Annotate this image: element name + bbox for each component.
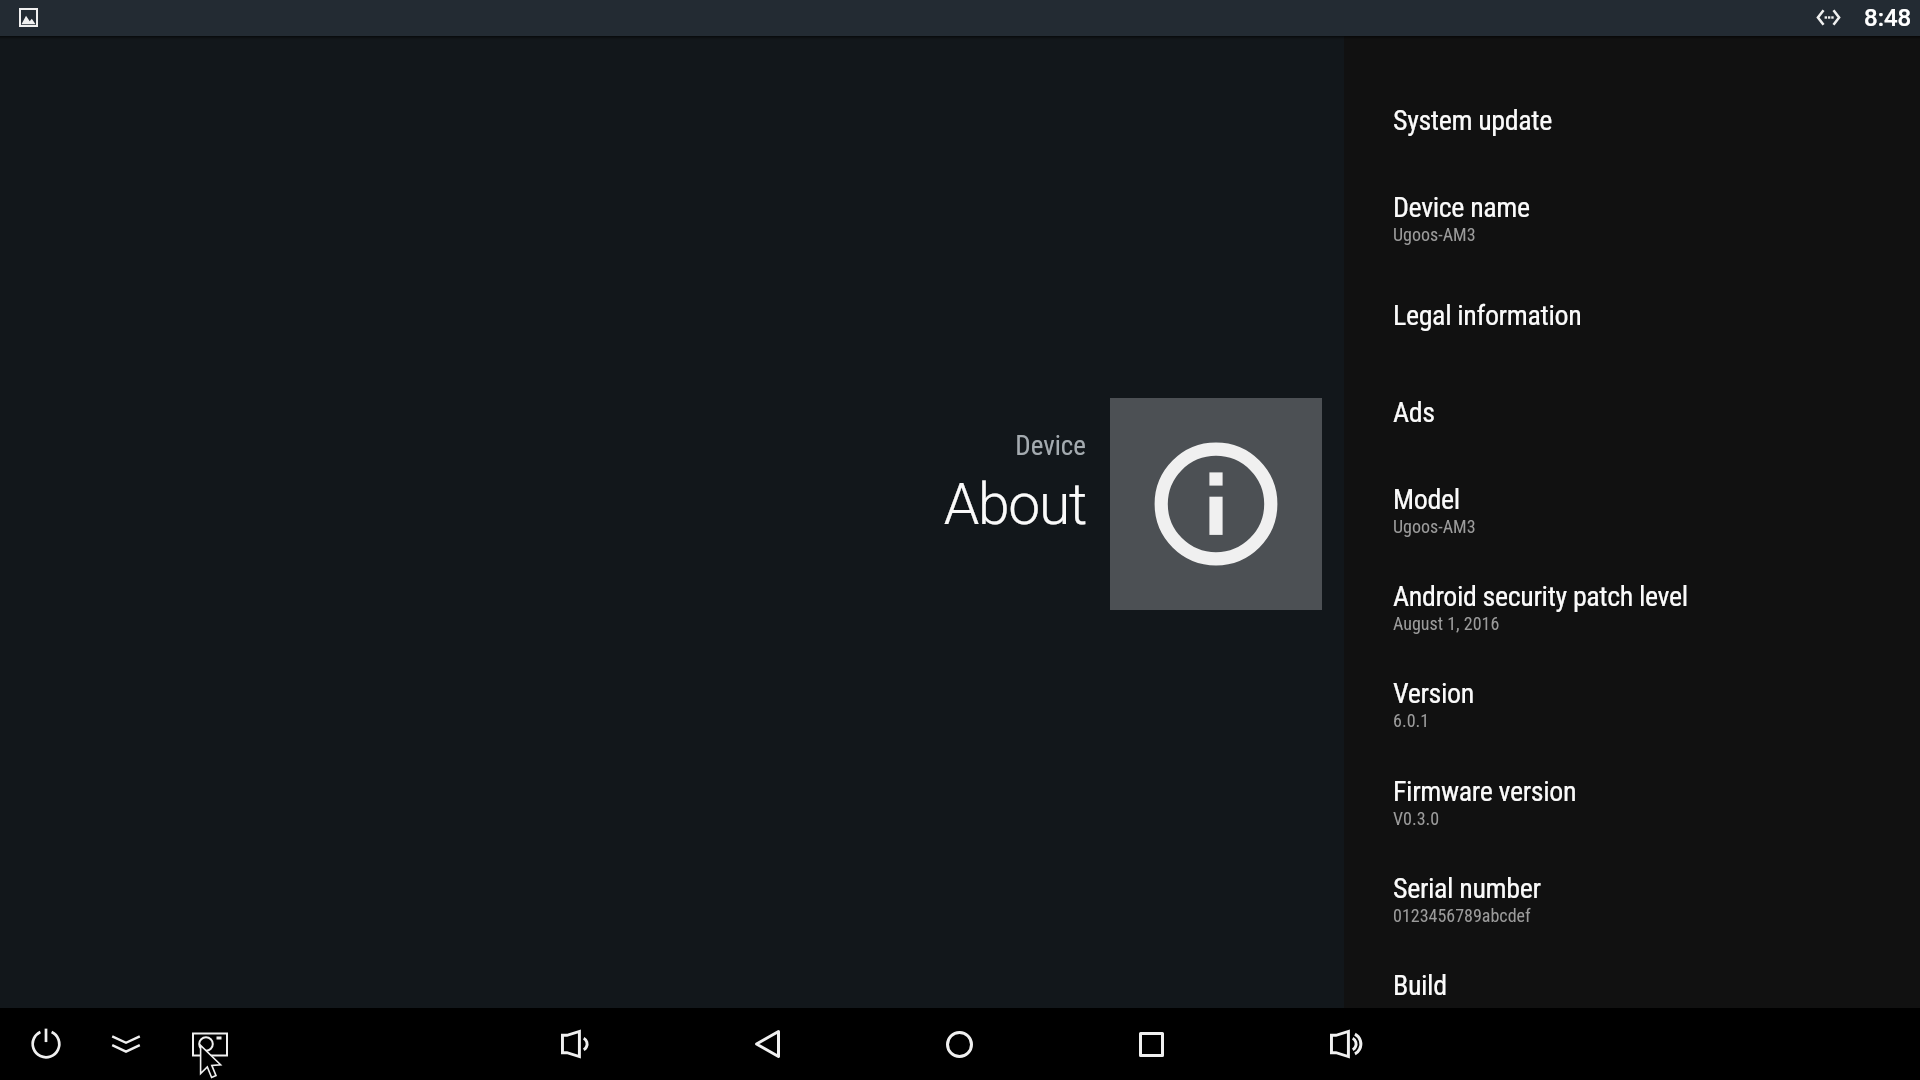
button[interactable]: Serial number <box>1393 872 1913 926</box>
button[interactable]: Screenshot saved <box>19 8 38 27</box>
button[interactable]: Android security patch level <box>1393 580 1913 634</box>
staticText: Version <box>1393 677 1474 710</box>
staticText: 0123456789abcdef <box>1393 905 1531 926</box>
button[interactable]: Back <box>739 1008 795 1080</box>
staticText: 8:48 <box>1864 4 1912 32</box>
staticText: Serial number <box>1393 872 1541 905</box>
staticText: System update <box>1393 104 1552 137</box>
button[interactable]: System update <box>1393 104 1913 137</box>
button[interactable]: Ethernet connected <box>1817 10 1840 25</box>
staticText: Ugoos-AM3 <box>1393 516 1476 537</box>
staticText: Device <box>1015 430 1086 462</box>
staticText: Android security patch level <box>1393 580 1688 613</box>
staticText: Ads <box>1393 396 1435 429</box>
staticText <box>1393 1002 1398 1023</box>
staticText: Ugoos-AM3 <box>1393 224 1476 245</box>
staticText: 6.0.1 <box>1393 710 1430 731</box>
staticText: Device name <box>1393 191 1530 224</box>
button[interactable]: Volume up <box>1316 1008 1372 1080</box>
staticText: Firmware version <box>1393 775 1577 808</box>
button[interactable]: Take screenshot <box>182 1022 238 1080</box>
staticText: Model <box>1393 483 1460 516</box>
button[interactable]: About device <box>1110 398 1322 610</box>
button[interactable]: Device name <box>1393 191 1913 245</box>
button[interactable]: Model <box>1393 483 1913 537</box>
button[interactable]: Legal information <box>1393 299 1913 332</box>
button[interactable]: Firmware version <box>1393 775 1913 829</box>
button[interactable]: Power <box>18 1008 74 1080</box>
button[interactable]: Recent apps <box>1123 1008 1179 1080</box>
staticText: Build <box>1393 969 1447 1002</box>
button[interactable]: Build <box>1393 969 1913 1023</box>
button[interactable]: Version <box>1393 677 1913 731</box>
button[interactable]: Home <box>931 1008 987 1080</box>
button[interactable]: Ads <box>1393 396 1913 429</box>
staticText: V0.3.0 <box>1393 808 1440 829</box>
staticText: August 1, 2016 <box>1393 613 1500 634</box>
button[interactable]: Hide <box>98 1008 154 1080</box>
staticText: About <box>943 471 1086 538</box>
button[interactable]: Volume down <box>546 1008 602 1080</box>
staticText: Legal information <box>1393 299 1582 332</box>
